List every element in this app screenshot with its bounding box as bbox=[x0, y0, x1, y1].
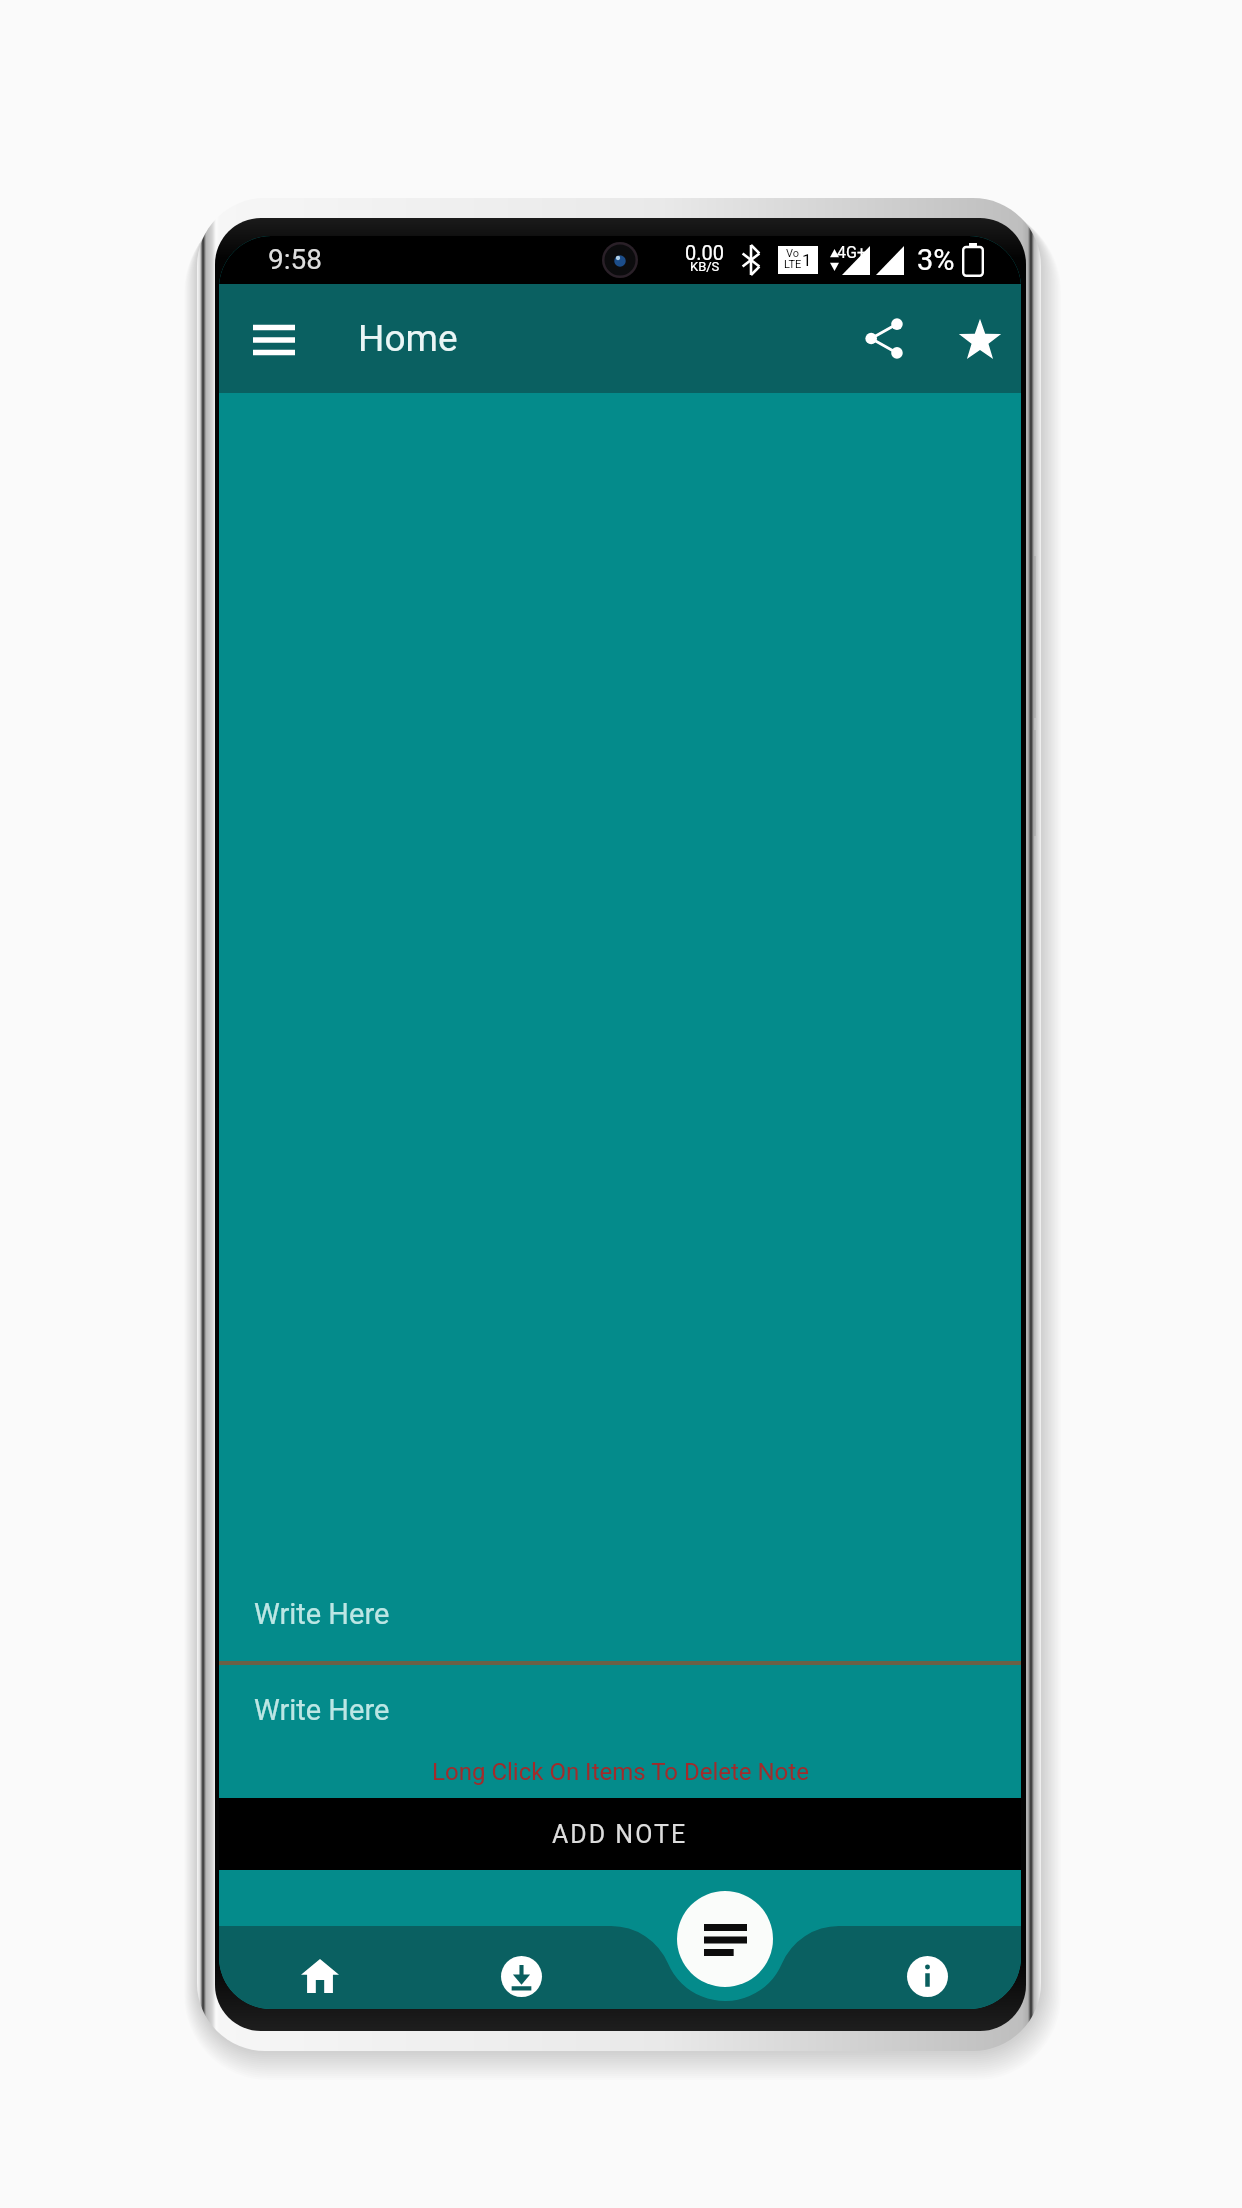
button[interactable]: Share bbox=[845, 294, 923, 384]
staticText: 9:58 bbox=[268, 243, 322, 276]
staticText: 1 bbox=[802, 250, 812, 270]
button[interactable]: Open navigation drawer bbox=[237, 302, 311, 376]
staticText: LTE bbox=[784, 258, 802, 271]
staticText: Write Here bbox=[254, 1597, 390, 1631]
staticText: 0.00 bbox=[685, 241, 724, 264]
staticText: Long Click On Items To Delete Note bbox=[432, 1758, 809, 1786]
button[interactable]: Show notes list bbox=[677, 1891, 773, 1987]
staticText: 3% bbox=[917, 243, 955, 277]
staticText: ADD NOTE bbox=[552, 1820, 688, 1849]
button[interactable]: Write Here bbox=[219, 1597, 1021, 1661]
staticText: KB/S bbox=[690, 259, 720, 274]
button[interactable]: Info bbox=[882, 1941, 972, 2009]
button[interactable]: Rate this app bbox=[941, 294, 1019, 384]
button[interactable]: ADD NOTE bbox=[219, 1798, 1021, 1870]
button[interactable]: Write Here bbox=[219, 1693, 1021, 1758]
button[interactable]: Downloads bbox=[476, 1941, 566, 2009]
staticText: Vo bbox=[786, 247, 800, 260]
staticText: 4G+ bbox=[837, 243, 866, 262]
button[interactable]: Home bbox=[275, 1941, 365, 2009]
staticText: Home bbox=[358, 317, 458, 360]
staticText: Write Here bbox=[254, 1693, 390, 1727]
